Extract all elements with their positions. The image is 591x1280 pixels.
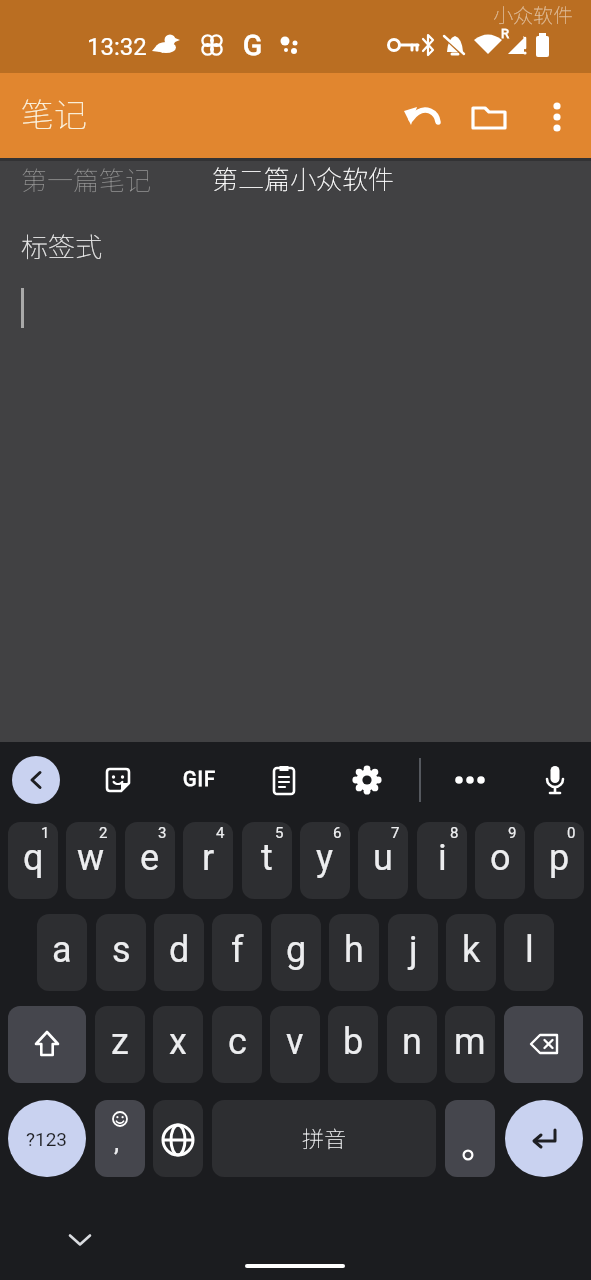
staticText: g — [286, 929, 307, 971]
button[interactable]: f — [212, 914, 262, 991]
button[interactable] — [504, 1006, 583, 1083]
button[interactable]: i — [417, 822, 467, 899]
staticText: 1 — [41, 824, 50, 842]
button[interactable] — [464, 93, 512, 141]
staticText: 8 — [450, 824, 459, 842]
staticText: 第一篇笔记 — [21, 160, 152, 198]
staticText: 标签式 — [21, 226, 102, 265]
button[interactable]: h — [329, 914, 379, 991]
staticText: m — [454, 1021, 486, 1063]
staticText: u — [373, 837, 393, 879]
staticText: 13:32 — [87, 33, 147, 61]
staticText: l — [525, 929, 534, 971]
button[interactable]: v — [270, 1006, 320, 1083]
staticText: 6 — [333, 824, 342, 842]
staticText: n — [402, 1021, 422, 1063]
button[interactable] — [94, 756, 142, 804]
staticText: z — [111, 1021, 129, 1063]
staticText: h — [344, 929, 364, 971]
button[interactable] — [505, 1100, 583, 1177]
staticText: G — [243, 29, 263, 62]
button[interactable] — [260, 756, 308, 804]
staticText: a — [52, 929, 72, 971]
staticText: 3 — [158, 824, 167, 842]
button[interactable]: z — [95, 1006, 145, 1083]
button[interactable] — [343, 756, 391, 804]
button[interactable]: g — [271, 914, 321, 991]
staticText: 笔记 — [21, 89, 87, 137]
button[interactable]: w — [66, 822, 116, 899]
staticText: v — [286, 1021, 304, 1063]
staticText: 第二篇小众软件 — [212, 159, 395, 197]
staticText: 小众软件 — [493, 0, 573, 29]
staticText: 0 — [567, 824, 576, 842]
button[interactable] — [533, 93, 581, 141]
staticText: i — [438, 837, 447, 879]
button[interactable]: x — [153, 1006, 203, 1083]
staticText: s — [112, 929, 131, 971]
button[interactable] — [95, 1100, 145, 1177]
button[interactable]: l — [504, 914, 554, 991]
button[interactable]: s — [96, 914, 146, 991]
staticText: 2 — [99, 824, 108, 842]
button[interactable] — [56, 1222, 104, 1258]
staticText: e — [140, 837, 160, 879]
staticText: w — [77, 837, 105, 879]
staticText: , — [114, 1127, 120, 1157]
staticText: q — [23, 837, 44, 879]
staticText: p — [549, 837, 570, 879]
staticText: f — [231, 929, 244, 971]
button[interactable] — [153, 1100, 203, 1177]
button[interactable] — [445, 1100, 495, 1177]
button[interactable]: r — [183, 822, 233, 899]
staticText: R — [501, 26, 510, 41]
staticText: 5 — [275, 824, 284, 842]
button[interactable]: c — [212, 1006, 262, 1083]
button[interactable]: a — [37, 914, 87, 991]
staticText: 拼音 — [302, 1121, 347, 1153]
button[interactable] — [200, 158, 400, 208]
button[interactable] — [177, 756, 225, 804]
button[interactable]: u — [358, 822, 408, 899]
button[interactable]: n — [387, 1006, 437, 1083]
button[interactable]: j — [388, 914, 438, 991]
button[interactable] — [12, 756, 60, 804]
button[interactable] — [531, 756, 579, 804]
button[interactable]: m — [445, 1006, 495, 1083]
staticText: 9 — [508, 824, 517, 842]
button[interactable]: q — [8, 822, 58, 899]
button[interactable]: y — [300, 822, 350, 899]
button[interactable]: p — [534, 822, 584, 899]
staticText: c — [228, 1021, 247, 1063]
staticText: 4 — [216, 824, 225, 842]
staticText: t — [261, 837, 273, 879]
button[interactable]: t — [242, 822, 292, 899]
staticText: x — [169, 1021, 187, 1063]
button[interactable] — [399, 93, 447, 141]
button[interactable]: ?123 — [8, 1100, 86, 1177]
staticText: b — [343, 1021, 364, 1063]
button[interactable] — [8, 1006, 86, 1083]
staticText: GIF — [183, 767, 217, 790]
button[interactable]: d — [154, 914, 204, 991]
staticText: 7 — [391, 824, 400, 842]
staticText: o — [490, 837, 511, 879]
staticText: j — [409, 929, 418, 971]
button[interactable]: k — [446, 914, 496, 991]
staticText: ?123 — [26, 1128, 68, 1150]
button[interactable] — [0, 158, 190, 208]
button[interactable]: e — [125, 822, 175, 899]
button[interactable]: 拼音 — [212, 1100, 436, 1177]
staticText: d — [169, 929, 190, 971]
staticText: k — [462, 929, 481, 971]
button[interactable] — [446, 756, 494, 804]
button[interactable]: b — [328, 1006, 378, 1083]
staticText: r — [202, 837, 215, 879]
staticText: y — [316, 837, 334, 879]
button[interactable]: o — [475, 822, 525, 899]
